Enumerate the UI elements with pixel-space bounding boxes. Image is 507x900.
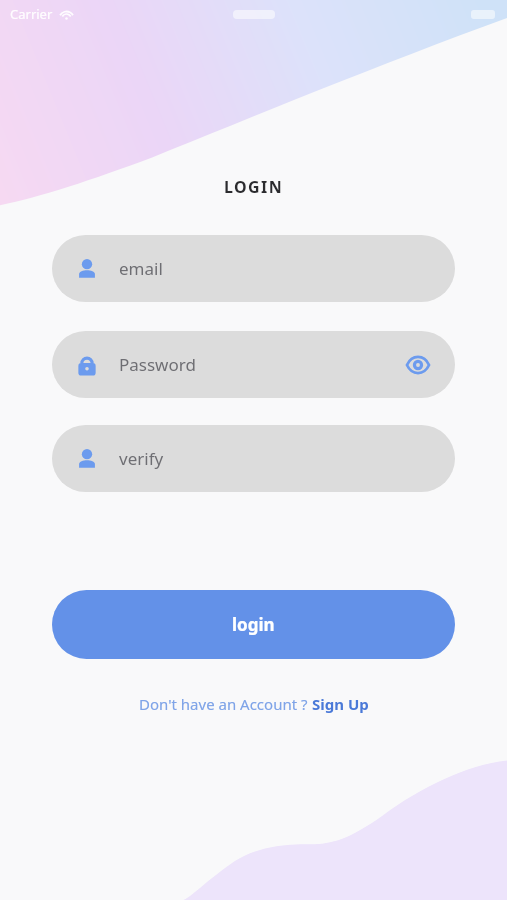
staticText: verify (119, 447, 164, 470)
staticText: Carrier (10, 5, 53, 23)
staticText: Sign Up (312, 694, 369, 714)
button[interactable]: verify (52, 425, 455, 492)
button[interactable]: Don't have an Account ? (131, 690, 377, 718)
staticText: Password (119, 353, 196, 376)
button[interactable]: email (52, 235, 455, 302)
staticText: Don't have an Account ? (139, 694, 312, 714)
button[interactable]: login (52, 590, 455, 659)
staticText: login (232, 613, 275, 636)
staticText: LOGIN (224, 176, 284, 198)
button[interactable]: Show password (403, 350, 433, 380)
button[interactable]: Password (52, 331, 455, 398)
staticText: email (119, 257, 163, 280)
